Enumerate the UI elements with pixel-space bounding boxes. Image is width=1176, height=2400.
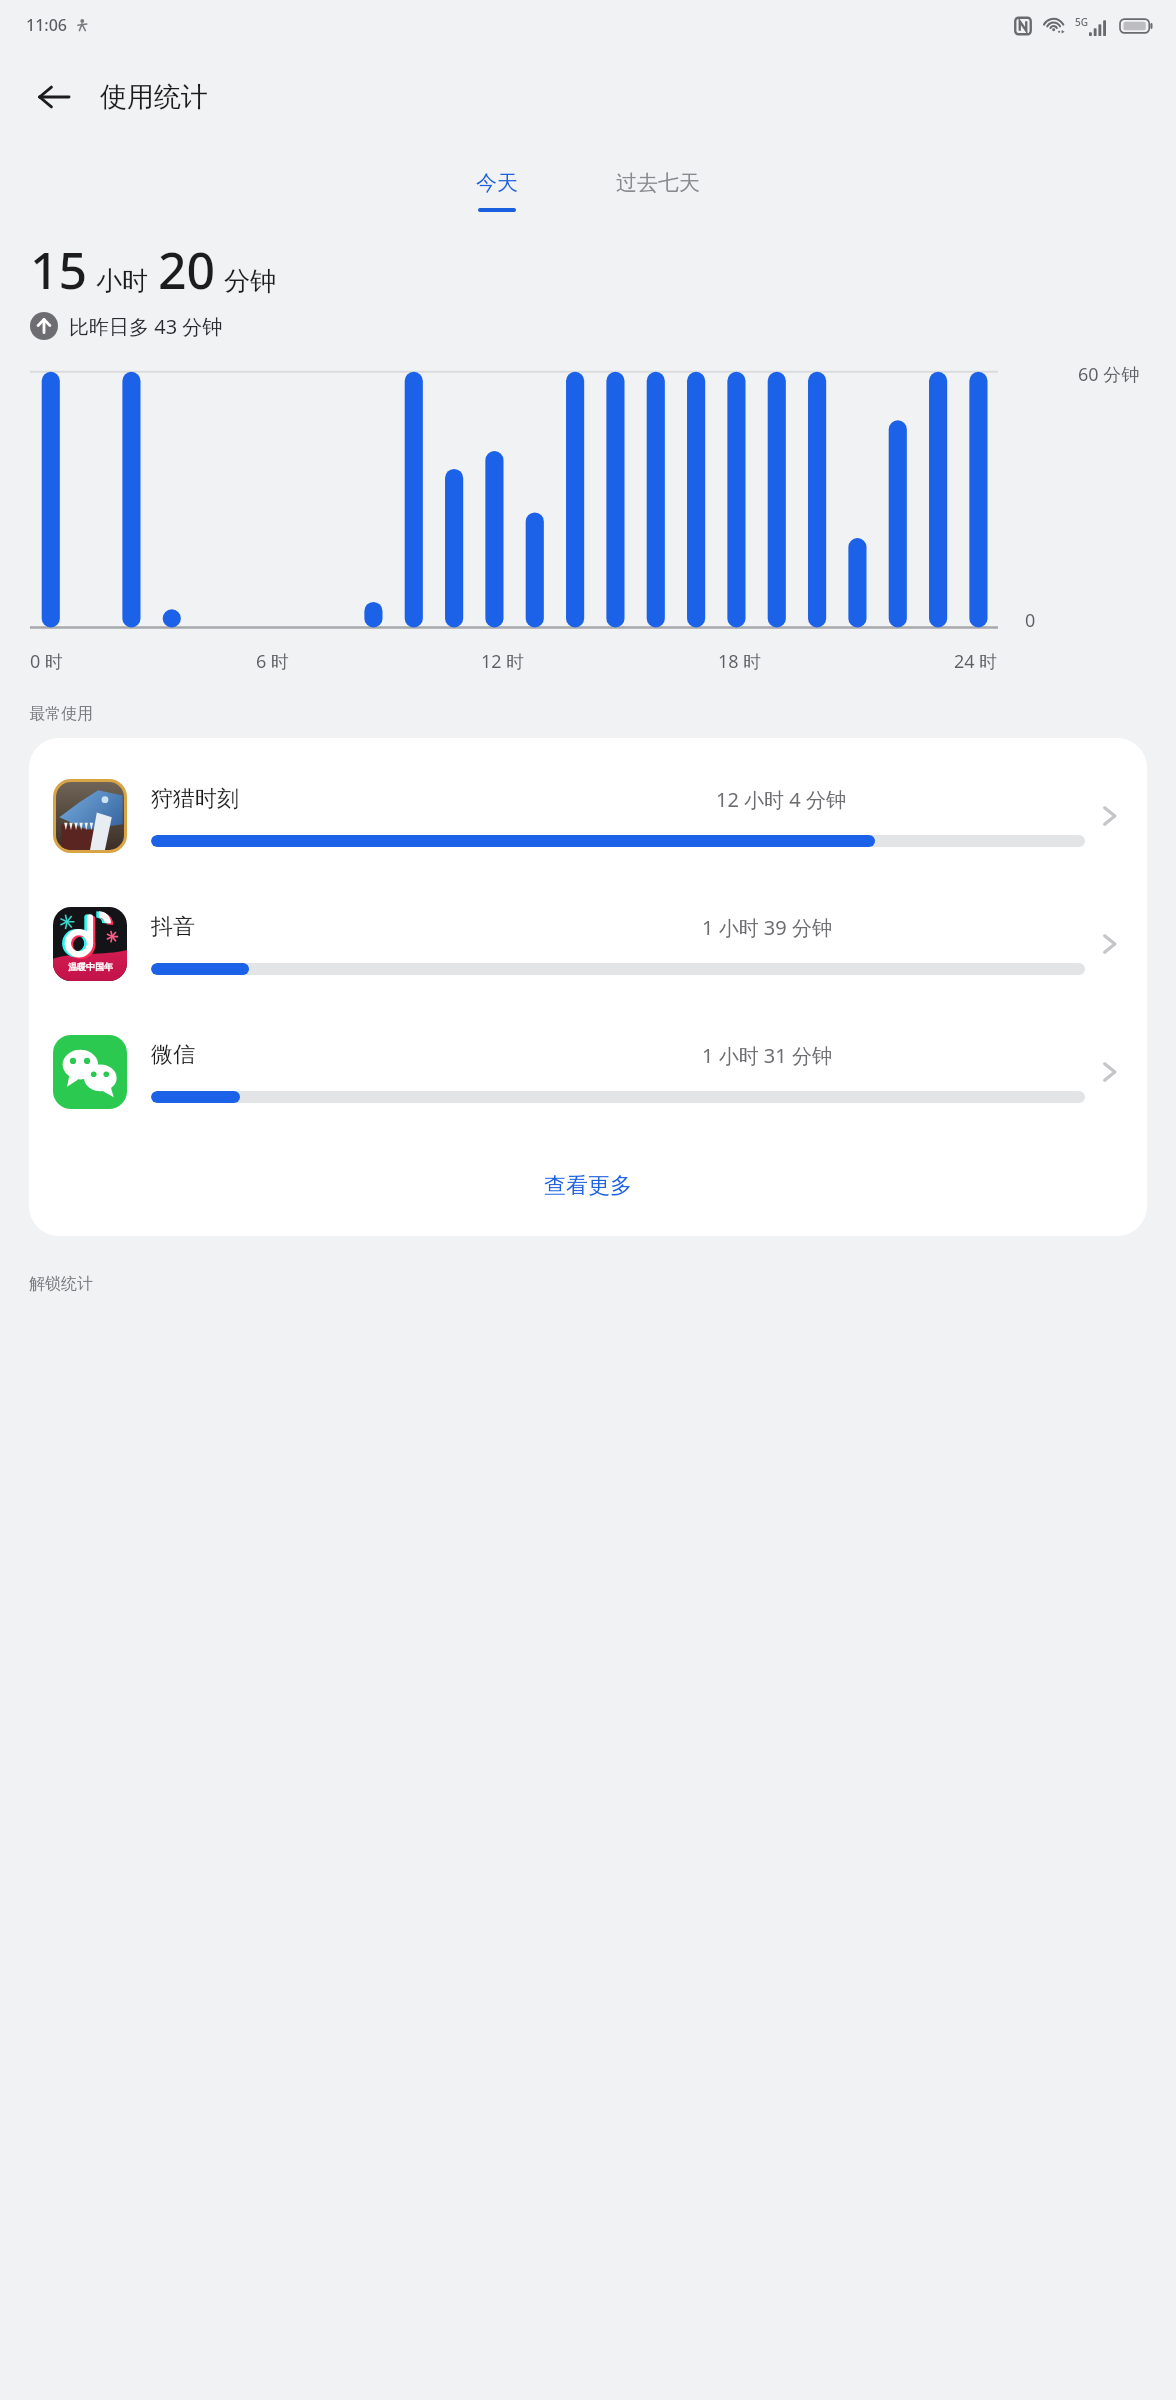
staticText: 60 分钟 xyxy=(1078,362,1140,387)
staticText: 微信 xyxy=(151,1041,195,1069)
staticText: 11:06 xyxy=(26,14,67,36)
staticText: 1 小时 31 分钟 xyxy=(702,1042,832,1069)
button[interactable]: 查看更多 xyxy=(29,1136,1147,1236)
staticText: 过去七天 xyxy=(616,170,700,196)
staticText: 0 xyxy=(1025,608,1036,633)
staticText: 今天 xyxy=(476,170,518,196)
staticText: 12 小时 4 分钟 xyxy=(716,786,846,813)
button[interactable]: 今天 xyxy=(454,166,540,216)
staticText: 12 时 xyxy=(481,649,525,674)
staticText: 温暖中国年 xyxy=(68,961,113,972)
staticText: 解锁统计 xyxy=(29,1274,93,1294)
staticText: 抖音 xyxy=(151,913,195,941)
staticText: 15 xyxy=(30,236,88,304)
staticText: 使用统计 xyxy=(100,80,208,114)
button[interactable]: Back xyxy=(24,67,84,127)
other: Details xyxy=(1085,920,1133,968)
button[interactable]: 过去七天 xyxy=(594,166,722,216)
other: Details xyxy=(1085,792,1133,840)
staticText: 5G xyxy=(1075,15,1088,29)
staticText: 查看更多 xyxy=(544,1172,632,1200)
staticText: 最常使用 xyxy=(29,704,93,724)
staticText: 0 时 xyxy=(30,649,63,674)
button[interactable]: 狩猎时刻 xyxy=(29,752,1147,880)
staticText: 比昨日多 43 分钟 xyxy=(69,313,223,340)
staticText: 24 时 xyxy=(954,649,998,674)
staticText: 1 小时 39 分钟 xyxy=(702,914,832,941)
staticText: 18 时 xyxy=(718,649,762,674)
staticText: 分钟 xyxy=(224,265,276,298)
staticText: 小时 xyxy=(96,265,148,298)
staticText: 20 xyxy=(158,236,216,304)
staticText: 6 时 xyxy=(256,649,289,674)
button[interactable]: 温暖中国年 xyxy=(29,880,1147,1008)
staticText: 狩猎时刻 xyxy=(151,785,239,813)
other: Details xyxy=(1085,1048,1133,1096)
button[interactable]: 微信 xyxy=(29,1008,1147,1136)
